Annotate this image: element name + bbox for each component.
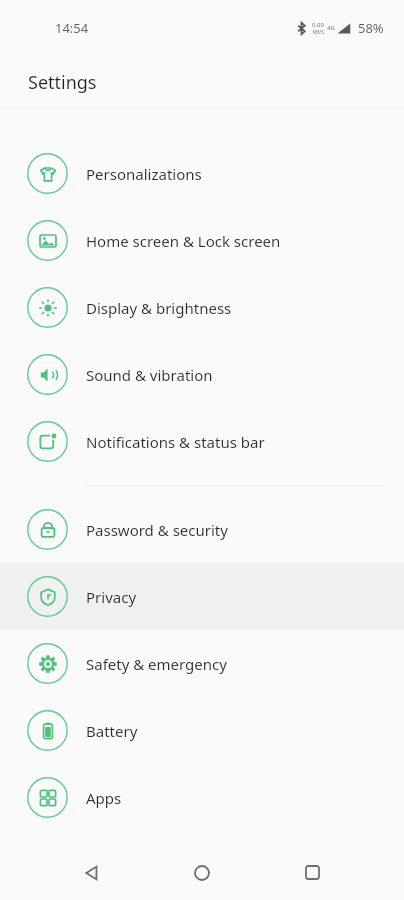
button[interactable]: Notifications & status bar (0, 408, 404, 475)
button[interactable]: Apps (0, 764, 404, 831)
button[interactable]: Home (147, 845, 257, 900)
staticText: Display & brightness (86, 298, 232, 318)
button[interactable]: Display & brightness (0, 274, 404, 341)
staticText: 14:54 (55, 19, 89, 37)
button[interactable]: Home screen & Lock screen (0, 207, 404, 274)
staticText: Personalizations (86, 164, 202, 184)
button[interactable]: Back (37, 845, 147, 900)
staticText: 0.00 (312, 21, 324, 29)
button[interactable]: Battery (0, 697, 404, 764)
button[interactable]: Password & security (0, 496, 404, 563)
staticText: Home screen & Lock screen (86, 231, 281, 251)
staticText: Apps (86, 788, 122, 808)
button[interactable]: Personalizations (0, 140, 404, 207)
staticText: 58% (358, 19, 384, 37)
button[interactable]: Recent apps (257, 845, 367, 900)
staticText: Notifications & status bar (86, 432, 265, 452)
staticText: Battery (86, 721, 138, 741)
staticText: Safety & emergency (86, 654, 227, 674)
staticText: 4G (327, 24, 335, 32)
staticText: Password & security (86, 520, 228, 540)
button[interactable]: Privacy (0, 563, 404, 630)
staticText: Sound & vibration (86, 365, 213, 385)
button[interactable]: Sound & vibration (0, 341, 404, 408)
staticText: KB/S (313, 29, 324, 36)
button[interactable]: Safety & emergency (0, 630, 404, 697)
staticText: Settings (28, 70, 97, 95)
staticText: Privacy (86, 587, 137, 607)
